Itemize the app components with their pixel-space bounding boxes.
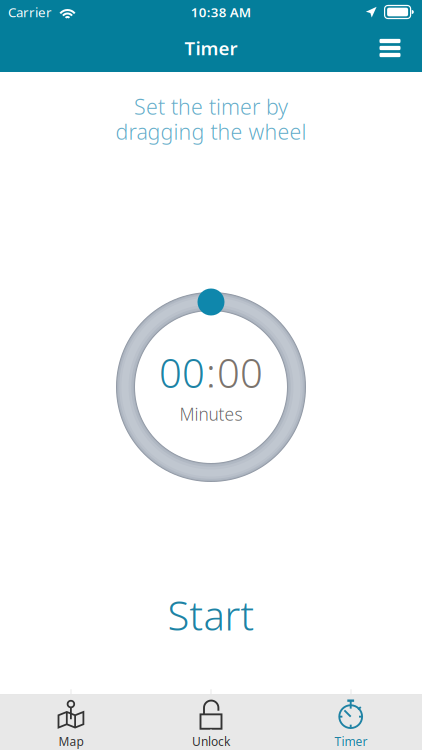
staticText: 10:38 AM [191,3,251,21]
staticText: Carrier [8,3,52,21]
staticText: 00 [217,346,263,399]
staticText: Map [58,733,83,749]
staticText: Minutes [179,402,242,425]
staticText: 00 [159,346,205,399]
staticText: dragging the wheel [115,117,306,146]
button[interactable]: Unlock [141,694,281,750]
staticText: Timer [184,36,237,60]
staticText: Unlock [192,733,230,749]
staticText: Timer [334,733,367,749]
button[interactable]: Map [1,694,141,750]
staticText: : [206,346,216,399]
staticText: Set the timer by [134,92,288,121]
button[interactable]: Start [111,593,311,637]
button[interactable]: Menu [366,26,414,70]
button[interactable]: Timer [281,694,421,750]
staticText: Start [167,588,254,641]
